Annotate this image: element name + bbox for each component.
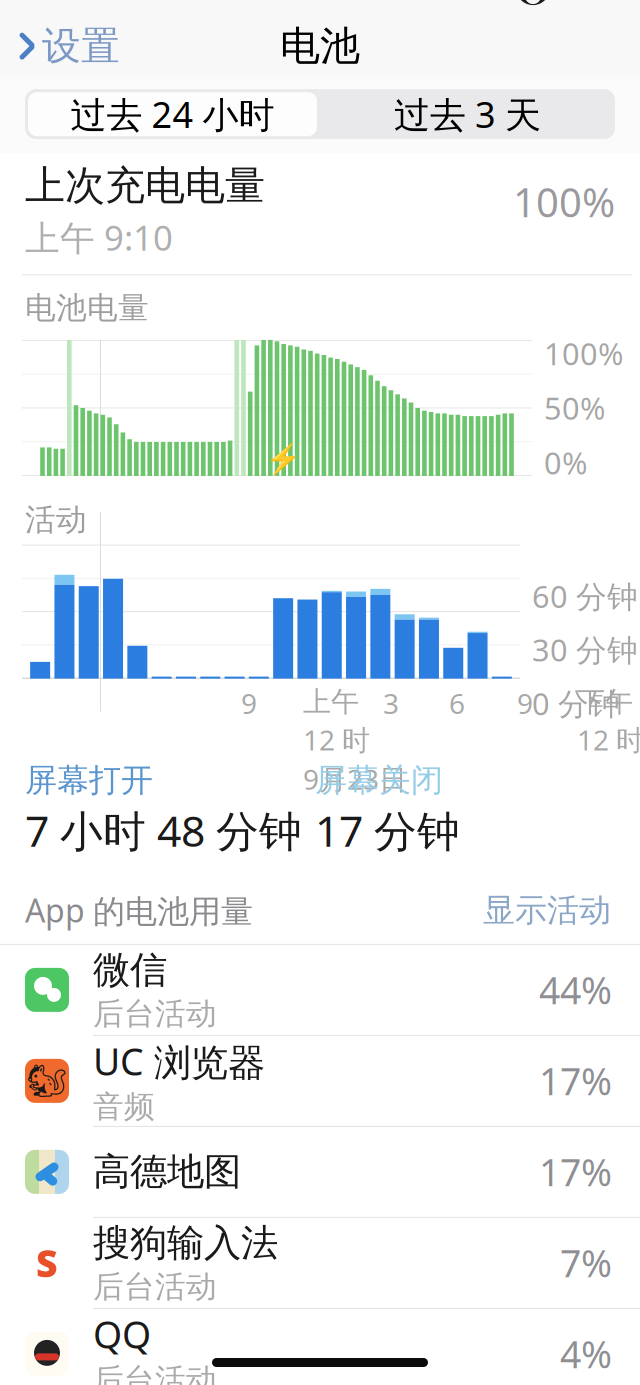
button[interactable]: 显示活动 xyxy=(479,885,615,936)
staticText: 17% xyxy=(539,1147,612,1197)
staticText: 上次充电电量 xyxy=(25,161,265,210)
staticText: 后台活动 xyxy=(93,1268,217,1306)
staticText: 4% xyxy=(560,1329,612,1379)
button[interactable]: 过去 3 天 xyxy=(320,89,615,139)
staticText: 100% xyxy=(544,333,623,374)
button[interactable]: S xyxy=(0,1218,640,1309)
button[interactable]: 设置 xyxy=(0,14,138,78)
staticText: 高德地图 xyxy=(93,1149,241,1195)
staticText: 44% xyxy=(539,965,612,1015)
staticText: 9 xyxy=(517,685,533,722)
staticText: 活动 xyxy=(25,501,87,539)
staticText: 60 分钟 xyxy=(532,576,638,616)
button[interactable]: 高德地图 xyxy=(0,1127,640,1218)
staticText: 后台活动 xyxy=(93,1361,217,1385)
staticText: 后台活动 xyxy=(93,995,217,1033)
staticText: 12 时 xyxy=(303,721,370,758)
staticText: 9 xyxy=(241,685,257,722)
staticText: 音频 xyxy=(93,1088,155,1126)
staticText: 🐿 xyxy=(26,1063,67,1099)
staticText: 搜狗输入法 xyxy=(93,1220,278,1266)
staticText: 上午 9:10 xyxy=(25,214,173,260)
staticText: QQ xyxy=(93,1309,151,1359)
staticText: 9月23日 xyxy=(303,760,407,797)
staticText: 下午 xyxy=(577,685,633,719)
button[interactable]: 微信 xyxy=(0,945,640,1036)
staticText: 100% xyxy=(513,175,615,228)
staticText: 30 分钟 xyxy=(532,629,638,670)
staticText: 7% xyxy=(560,1238,612,1288)
staticText: 6 xyxy=(449,685,465,722)
staticText: 3 xyxy=(383,685,399,722)
staticText: UC 浏览器 xyxy=(93,1036,265,1086)
staticText: 屏幕关闭 xyxy=(315,761,443,800)
button[interactable]: 过去 24 小时 xyxy=(25,89,320,139)
staticText: 电池 xyxy=(280,21,360,71)
staticText: App 的电池用量 xyxy=(25,889,253,932)
staticText: ⚡ xyxy=(265,442,302,476)
staticText: 17% xyxy=(539,1056,612,1106)
staticText: S xyxy=(36,1238,58,1288)
staticText: 12 时 xyxy=(577,721,640,758)
staticText: 设置 xyxy=(42,22,120,70)
staticText: 50% xyxy=(544,388,605,428)
staticText: 0% xyxy=(544,442,587,483)
staticText: 7 小时 48 分钟 xyxy=(25,802,302,859)
button[interactable]: 🐿 xyxy=(0,1036,640,1127)
staticText: 上午 xyxy=(303,685,359,719)
staticText: 微信 xyxy=(93,947,167,993)
staticText: 0 分钟 xyxy=(532,683,620,724)
staticText: 过去 3 天 xyxy=(394,90,541,138)
staticText: 17 分钟 xyxy=(315,802,460,859)
staticText: 电池电量 xyxy=(25,289,149,327)
staticText: 过去 24 小时 xyxy=(70,90,274,138)
button[interactable]: QQ xyxy=(0,1309,640,1385)
staticText: 屏幕打开 xyxy=(25,761,153,800)
staticText: 显示活动 xyxy=(483,891,611,930)
